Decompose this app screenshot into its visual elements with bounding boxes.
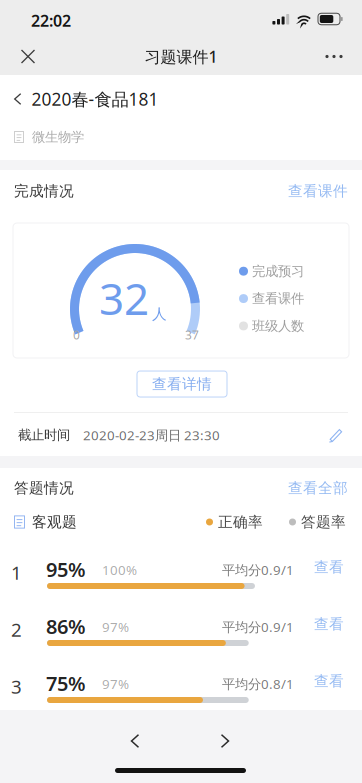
staticText: 查看详情 bbox=[152, 375, 212, 393]
staticText: 1 bbox=[11, 560, 22, 585]
staticText: 100% bbox=[102, 561, 137, 579]
staticText: 查看课件 bbox=[288, 182, 348, 200]
staticText: 正确率 bbox=[218, 513, 263, 531]
button[interactable]: 查看 bbox=[314, 615, 348, 633]
staticText: 2 bbox=[11, 617, 22, 642]
staticText: 平均分0.8/1 bbox=[222, 675, 294, 693]
staticText: 75% bbox=[46, 670, 86, 697]
staticText: 查看 bbox=[314, 672, 344, 690]
staticText: 查看全部 bbox=[288, 479, 348, 497]
staticText: 完成情况 bbox=[14, 182, 74, 200]
staticText: 86% bbox=[46, 613, 86, 640]
staticText: 查看 bbox=[314, 615, 344, 633]
staticText: 2020春-食品181 bbox=[31, 87, 158, 110]
button[interactable]: 2020春-食品181 bbox=[0, 84, 362, 114]
button[interactable]: Close bbox=[4, 38, 52, 75]
staticText: 查看课件 bbox=[252, 290, 304, 307]
staticText: 答题情况 bbox=[14, 479, 74, 497]
staticText: 37 bbox=[185, 327, 199, 343]
button[interactable]: 查看课件 bbox=[288, 182, 348, 200]
staticText: 班级人数 bbox=[252, 318, 304, 334]
staticText: 97% bbox=[102, 675, 129, 693]
staticText: 22:02 bbox=[31, 10, 71, 31]
button[interactable]: Edit deadline bbox=[328, 426, 344, 443]
button[interactable]: Next bbox=[203, 723, 247, 759]
staticText: 查看 bbox=[314, 558, 344, 576]
staticText: 平均分0.9/1 bbox=[222, 561, 294, 579]
button[interactable]: 查看 bbox=[314, 558, 348, 576]
staticText: 截止时间 bbox=[18, 427, 70, 443]
button[interactable]: 查看全部 bbox=[288, 479, 348, 497]
button[interactable]: 查看详情 bbox=[137, 371, 227, 397]
staticText: 答题率 bbox=[301, 513, 346, 531]
staticText: 32 bbox=[99, 269, 149, 327]
staticText: 习题课件1 bbox=[144, 46, 217, 67]
staticText: 平均分0.9/1 bbox=[222, 618, 294, 636]
staticText: 人 bbox=[152, 305, 167, 323]
staticText: 完成预习 bbox=[252, 263, 304, 279]
staticText: 客观题 bbox=[32, 513, 77, 531]
button[interactable]: 查看 bbox=[314, 672, 348, 690]
staticText: 2020-02-23周日 23:30 bbox=[83, 426, 220, 444]
staticText: 97% bbox=[102, 618, 129, 636]
button[interactable]: Previous bbox=[113, 723, 157, 759]
button[interactable]: More bbox=[310, 38, 358, 75]
staticText: 3 bbox=[11, 674, 22, 699]
staticText: 0 bbox=[73, 327, 80, 343]
staticText: 95% bbox=[46, 556, 86, 583]
staticText: 微生物学 bbox=[32, 129, 84, 145]
